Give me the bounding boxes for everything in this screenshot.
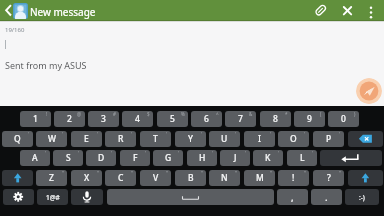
button[interactable] (311, 1, 330, 20)
staticText: ' (235, 131, 237, 137)
button[interactable] (363, 1, 379, 20)
button[interactable]: M (244, 170, 275, 186)
staticText: F (133, 152, 138, 164)
staticText: 5 (170, 113, 175, 125)
staticText: ' (304, 131, 306, 137)
button[interactable]: O (278, 131, 309, 147)
button[interactable] (320, 150, 382, 166)
button[interactable]: W (36, 131, 67, 147)
staticText: , (291, 191, 294, 204)
button[interactable]: R (105, 131, 136, 147)
staticText: E (84, 133, 89, 145)
button[interactable]: 9 (294, 111, 325, 127)
button[interactable] (338, 1, 357, 20)
button[interactable] (107, 189, 274, 205)
button[interactable]: E (71, 131, 102, 147)
button[interactable]: B (175, 170, 206, 186)
staticText: # (113, 111, 116, 117)
staticText: ' (270, 131, 272, 137)
staticText: @ (77, 111, 82, 117)
button[interactable]: 6 (191, 111, 222, 127)
button[interactable]: U (209, 131, 240, 147)
staticText: Y (188, 133, 193, 145)
staticText: Z (49, 172, 54, 184)
button[interactable]: 3 (88, 111, 119, 127)
button[interactable] (356, 78, 382, 104)
button[interactable]: 5 (157, 111, 188, 127)
staticText: 4 (135, 113, 140, 125)
button[interactable]: G (153, 150, 183, 166)
button[interactable]: J (220, 150, 250, 166)
button[interactable]: 1@# (37, 189, 68, 205)
button[interactable]: 7 (225, 111, 256, 127)
staticText: ' (339, 131, 341, 137)
button[interactable]: :-) (345, 189, 379, 205)
staticText: G (165, 152, 172, 164)
staticText: " (62, 170, 64, 176)
button[interactable] (13, 3, 28, 19)
button[interactable]: S (53, 150, 83, 166)
staticText: ' (178, 150, 180, 156)
button[interactable]: Q (2, 131, 33, 147)
staticText: ' (278, 150, 280, 156)
button[interactable] (3, 189, 34, 205)
staticText: ' (145, 150, 147, 156)
staticText: Q (14, 133, 21, 145)
button[interactable] (348, 170, 383, 186)
button[interactable]: 8 (260, 111, 291, 127)
staticText: 3 (101, 113, 106, 125)
staticText: ! (46, 111, 48, 117)
button[interactable] (71, 189, 103, 205)
staticText: M (256, 172, 264, 184)
staticText: L (300, 152, 305, 164)
staticText: X (84, 172, 90, 184)
button[interactable]: D (86, 150, 116, 166)
button[interactable]: Y (175, 131, 206, 147)
staticText: ( (320, 111, 322, 117)
staticText: W (48, 133, 56, 145)
staticText: " (270, 170, 272, 176)
button[interactable]: K (253, 150, 283, 166)
staticText: 7 (238, 113, 243, 125)
staticText: ' (97, 131, 99, 137)
button[interactable]: 2 (54, 111, 85, 127)
staticText: " (339, 170, 341, 176)
button[interactable] (2, 3, 14, 18)
staticText: U (221, 133, 228, 145)
button[interactable]: Z (36, 170, 67, 186)
staticText: & (249, 111, 253, 117)
staticText: ' (111, 150, 113, 156)
staticText: 2 (67, 113, 72, 125)
button[interactable]: V (140, 170, 171, 186)
button[interactable]: H (187, 150, 217, 166)
staticText: A (32, 152, 38, 164)
staticText: ' (131, 131, 133, 137)
staticText: J (234, 152, 237, 164)
staticText: D (98, 152, 105, 164)
button[interactable]: A (20, 150, 50, 166)
button[interactable]: 1 (20, 111, 51, 127)
button[interactable]: . (311, 189, 342, 205)
button[interactable]: C (105, 170, 136, 186)
button[interactable]: ? (313, 170, 344, 186)
staticText: 9 (307, 113, 312, 125)
button[interactable] (348, 131, 383, 147)
button[interactable]: ! (278, 170, 309, 186)
button[interactable]: N (209, 170, 240, 186)
staticText: . (325, 191, 328, 204)
staticText: New message (30, 5, 96, 19)
button[interactable]: 0 (328, 111, 359, 127)
staticText: ' (201, 131, 203, 137)
staticText: " (131, 170, 133, 176)
button[interactable] (2, 170, 33, 186)
button[interactable]: , (277, 189, 308, 205)
staticText: H (199, 152, 206, 164)
button[interactable]: F (120, 150, 150, 166)
staticText: 0 (341, 113, 346, 125)
button[interactable]: L (287, 150, 317, 166)
button[interactable]: 4 (122, 111, 153, 127)
button[interactable]: P (313, 131, 344, 147)
button[interactable]: T (140, 131, 171, 147)
button[interactable]: X (71, 170, 102, 186)
button[interactable]: I (244, 131, 275, 147)
